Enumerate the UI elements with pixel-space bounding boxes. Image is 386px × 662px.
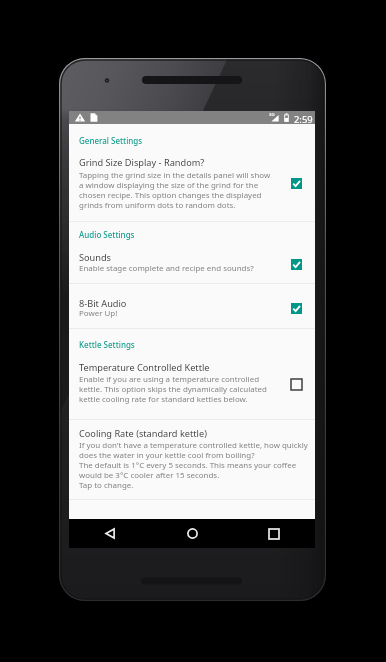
staticText: If you don't have a temperature controll… (79, 440, 308, 491)
button[interactable]: Toggle 8-Bit Audio (285, 297, 307, 319)
button[interactable]: Home (151, 519, 233, 548)
staticText: Audio Settings (79, 229, 135, 240)
staticText: 3G (269, 112, 275, 118)
button: Audio Settings (79, 229, 135, 240)
button[interactable] (69, 151, 315, 222)
staticText: General Settings (79, 135, 143, 146)
button[interactable]: Toggle Temperature Controlled Kettle (285, 373, 307, 395)
staticText: Grind Size Display - Random? (79, 156, 273, 169)
staticText: 2:59 (294, 113, 313, 126)
button: General Settings (79, 135, 143, 146)
staticText: Enable if you are using a temperature co… (79, 374, 273, 405)
button[interactable] (69, 246, 315, 283)
staticText: Enable stage complete and recipe end sou… (79, 263, 273, 274)
button[interactable]: Toggle Grind Size Display - Random? (285, 172, 307, 194)
button: Kettle Settings (79, 339, 135, 350)
staticText: Power Up! (79, 308, 273, 319)
staticText: Kettle Settings (79, 339, 135, 350)
button[interactable] (69, 284, 315, 328)
staticText: Temperature Controlled Kettle (79, 361, 273, 374)
button[interactable]: Recents (233, 519, 315, 548)
button[interactable]: Back (69, 519, 151, 548)
button[interactable] (69, 356, 315, 420)
staticText: Cooling Rate (standard kettle) (79, 427, 273, 440)
button[interactable] (69, 420, 315, 499)
button[interactable]: Toggle Sounds (285, 253, 307, 275)
staticText: 8-Bit Audio (79, 297, 273, 310)
staticText: Sounds (79, 251, 273, 264)
staticText: Tapping the grind size in the details pa… (79, 170, 273, 211)
